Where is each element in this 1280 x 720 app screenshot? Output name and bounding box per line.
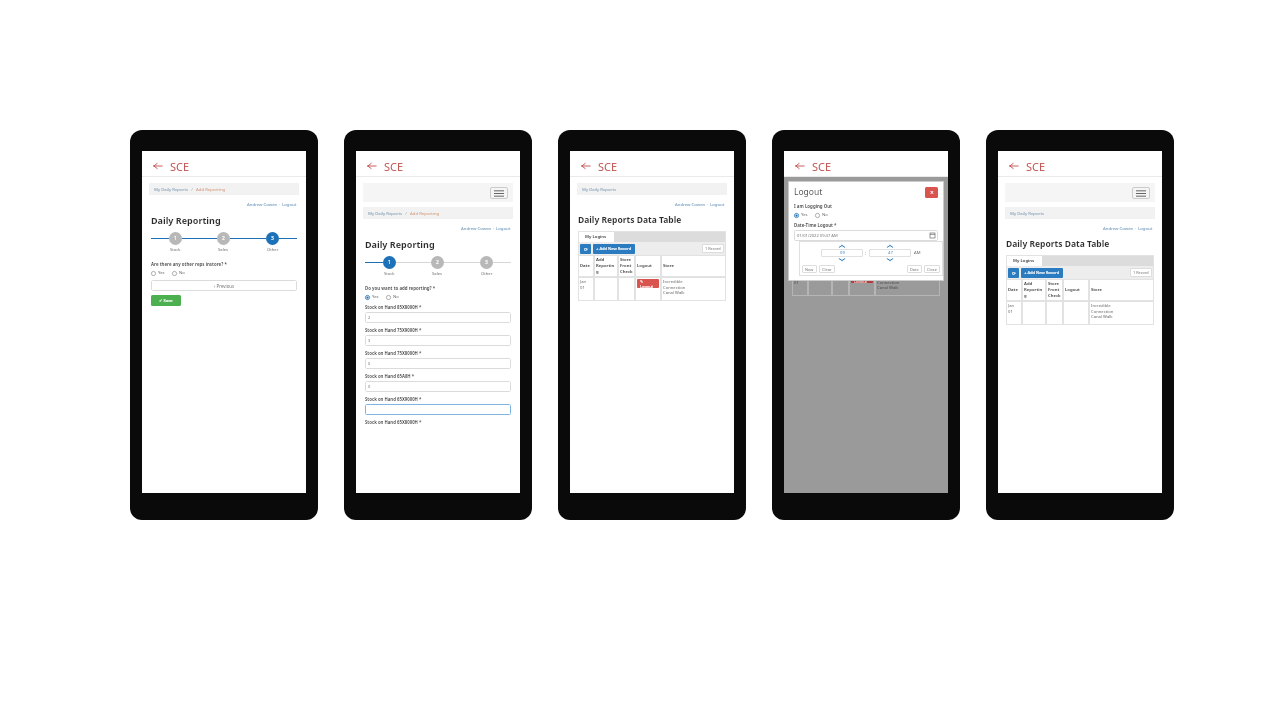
button[interactable]: 0 (365, 381, 511, 392)
staticText: Add Reporting (1024, 281, 1044, 299)
staticText: No (179, 270, 185, 276)
button[interactable]: 1 (169, 232, 182, 245)
button[interactable]: Andrew Cowen (1103, 225, 1134, 231)
button[interactable]: + Add New Record (1021, 268, 1063, 278)
button[interactable]: My Daily Reports (1005, 207, 1155, 219)
staticText: Add Reporting (410, 210, 440, 216)
staticText: 3 (271, 235, 274, 242)
staticText: 01/01/2022 09:47 AM (797, 233, 838, 239)
button[interactable]: 2 (217, 232, 230, 245)
staticText: / (189, 186, 196, 192)
button[interactable]: ✎ Logout (637, 279, 659, 288)
button[interactable]: 01/01/2022 09:47 AM (794, 230, 938, 241)
button[interactable]: + Add New Record (593, 244, 635, 254)
button[interactable]: ✓ Save (151, 295, 181, 306)
button[interactable]: My Logins (1006, 255, 1042, 266)
staticText: : (865, 250, 867, 256)
button[interactable]: Refresh (580, 244, 591, 254)
button[interactable]: Date (907, 265, 922, 273)
staticText: + Add New Record (1024, 270, 1060, 276)
staticText: Stock on Hand 65A8H * (365, 373, 415, 379)
staticText: Other (481, 271, 493, 277)
staticText: 2 (436, 259, 439, 266)
button[interactable]: Back (365, 159, 379, 173)
staticText: Daily Reports Data Table (578, 214, 682, 226)
button[interactable]: My Daily Reports (363, 207, 513, 219)
staticText: 47 (888, 250, 893, 256)
staticText: 1 (388, 259, 391, 266)
button[interactable]: Logout (710, 201, 725, 207)
staticText: Jan 01 (580, 279, 587, 291)
staticText: Sales (218, 247, 229, 253)
button[interactable]: Clear (819, 265, 835, 273)
staticText: ✎ Logout (640, 279, 656, 288)
staticText: My Logins (585, 234, 607, 240)
button[interactable]: Now (802, 265, 817, 273)
staticText: Logout (637, 263, 652, 269)
button[interactable]: 2 (365, 312, 511, 323)
staticText: Daily Reports Data Table (1006, 238, 1110, 250)
button[interactable]: Close (924, 265, 940, 273)
staticText: Store (663, 263, 675, 269)
staticText: / (403, 210, 410, 216)
button[interactable]: Yes (794, 212, 810, 218)
button[interactable]: No (815, 212, 830, 218)
button[interactable]: Decrease (886, 257, 894, 262)
button[interactable]: Yes (365, 294, 381, 300)
button[interactable]: Increase (838, 244, 846, 249)
button[interactable]: Back (1007, 159, 1021, 173)
other: Back (795, 161, 805, 171)
staticText: AM (914, 250, 921, 256)
staticText: Date (580, 263, 590, 269)
staticText: Other (267, 247, 279, 253)
button[interactable]: Yes (151, 270, 167, 276)
button[interactable]: Increase (886, 244, 894, 249)
button[interactable]: Decrease (838, 257, 846, 262)
button[interactable]: Back (579, 159, 593, 173)
staticText: 3 (368, 338, 371, 343)
staticText: Stock on Hand 75X8000H * (365, 350, 422, 356)
button[interactable]: Menu (1132, 187, 1150, 199)
button[interactable]: My Daily Reports (149, 183, 299, 195)
staticText: Daily Reporting (151, 214, 221, 226)
staticText: Logout (794, 186, 823, 198)
staticText: Close (927, 267, 937, 272)
button[interactable]: 2 (431, 256, 444, 269)
button[interactable]: My Logins (578, 231, 614, 242)
button[interactable]: 3 (365, 335, 511, 346)
staticText: Clear (822, 267, 832, 272)
staticText: 3 (485, 259, 488, 266)
other: Back (153, 161, 163, 171)
button[interactable]: Menu (490, 187, 508, 199)
staticText: · (278, 201, 282, 207)
button[interactable]: ‹ Previous (151, 280, 297, 291)
button[interactable]: Logout (496, 225, 511, 231)
button[interactable]: Logout (1138, 225, 1153, 231)
staticText: ✓ Save (159, 298, 173, 304)
button[interactable]: 3 (480, 256, 493, 269)
staticText: Stock on Hand 65X8000H * (365, 419, 422, 425)
button[interactable]: My Daily Reports (577, 183, 727, 195)
staticText: Yes (801, 212, 808, 218)
button[interactable] (365, 404, 511, 415)
staticText: 2 (368, 315, 371, 320)
button[interactable]: 0 (365, 358, 511, 369)
staticText: · (706, 201, 710, 207)
staticText: Yes (372, 294, 379, 300)
button[interactable]: Andrew Cowen (247, 201, 278, 207)
button[interactable]: Refresh (1008, 268, 1019, 278)
staticText: Date (910, 267, 919, 272)
staticText: Logout (1065, 287, 1080, 293)
button[interactable]: Andrew Cowen (675, 201, 706, 207)
button[interactable]: Back (793, 159, 807, 173)
button[interactable]: No (172, 270, 187, 276)
staticText: Now (805, 267, 814, 272)
staticText: Sales (432, 271, 443, 277)
button[interactable]: Back (151, 159, 165, 173)
button[interactable]: Logout (282, 201, 297, 207)
button[interactable]: 3 (266, 232, 279, 245)
button[interactable]: 1 (383, 256, 396, 269)
button[interactable]: Andrew Cowen (461, 225, 492, 231)
button[interactable]: No (386, 294, 401, 300)
button[interactable]: Close (925, 187, 938, 198)
